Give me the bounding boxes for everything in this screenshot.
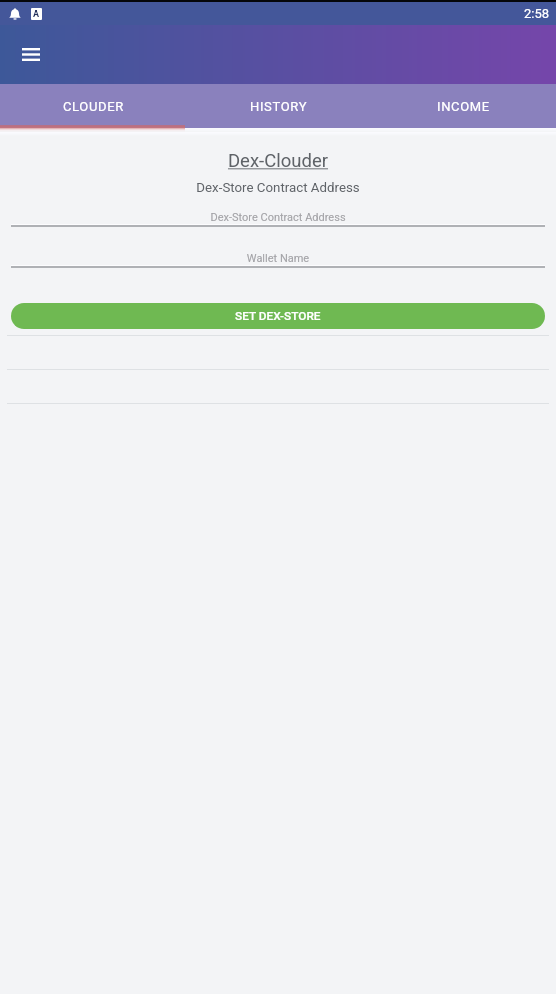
button[interactable]: Wallet Name <box>11 252 545 268</box>
staticText: SET DEX-STORE <box>235 309 321 323</box>
staticText: INCOME <box>437 99 490 114</box>
staticText: Dex-Store Contract Address <box>0 180 556 196</box>
button[interactable]: Dex-Store Contract Address <box>11 211 545 227</box>
button[interactable]: CLOUDER <box>0 84 186 127</box>
staticText: 2:58 <box>524 6 550 21</box>
staticText: Dex-Clouder <box>0 150 556 172</box>
button[interactable]: HISTORY <box>186 84 371 127</box>
button[interactable]: INCOME <box>371 84 556 127</box>
staticText: Wallet Name <box>11 252 545 265</box>
button[interactable]: SET DEX-STORE <box>11 303 545 329</box>
staticText: HISTORY <box>250 99 308 114</box>
staticText: A <box>33 9 40 20</box>
staticText: Dex-Store Contract Address <box>11 211 545 224</box>
button[interactable]: Open navigation menu <box>13 37 49 73</box>
staticText: CLOUDER <box>63 99 124 114</box>
